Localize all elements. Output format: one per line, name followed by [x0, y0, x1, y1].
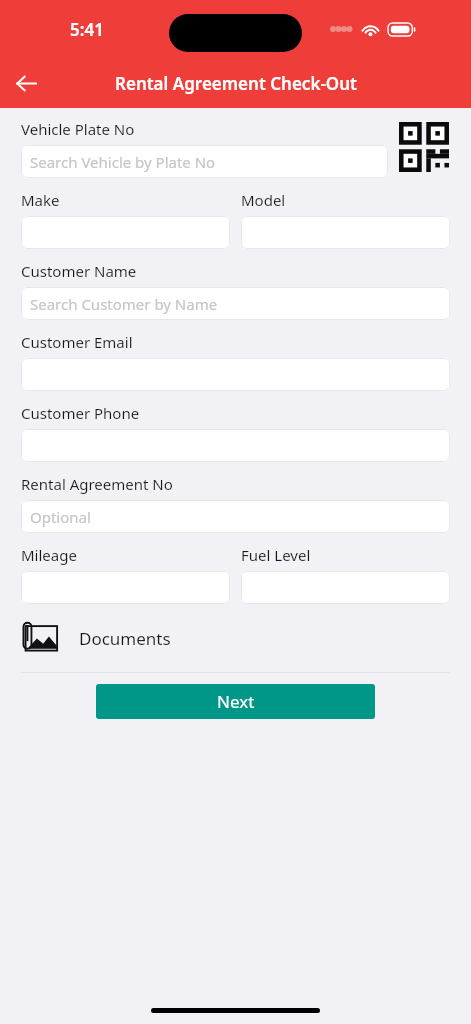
staticText: Model: [241, 190, 286, 210]
staticText: Fuel Level: [241, 545, 311, 565]
staticText: Customer Phone: [21, 403, 140, 423]
button[interactable]: [241, 571, 450, 604]
staticText: Make: [21, 190, 60, 210]
staticText: Vehicle Plate No: [21, 119, 135, 139]
button[interactable]: Search Vehicle by Plate No: [21, 145, 388, 178]
staticText: Mileage: [21, 545, 77, 565]
button[interactable]: Documents: [21, 621, 450, 655]
button[interactable]: [21, 571, 230, 604]
staticText: 5:41: [70, 18, 104, 41]
staticText: Search Customer by Name: [30, 294, 218, 314]
staticText: Rental Agreement No: [21, 474, 173, 494]
button[interactable]: [241, 216, 450, 249]
button[interactable]: Back: [10, 67, 42, 99]
staticText: Search Vehicle by Plate No: [30, 152, 216, 172]
button[interactable]: [21, 358, 450, 391]
button[interactable]: Scan QR code: [398, 121, 450, 173]
button[interactable]: Optional: [21, 500, 450, 533]
staticText: Customer Email: [21, 332, 133, 352]
button[interactable]: Search Customer by Name: [21, 287, 450, 320]
staticText: Customer Name: [21, 261, 137, 281]
staticText: Documents: [79, 627, 171, 650]
staticText: Next: [217, 690, 255, 713]
button[interactable]: [21, 216, 230, 249]
button[interactable]: [21, 429, 450, 462]
button[interactable]: Next: [96, 684, 375, 719]
staticText: Optional: [30, 507, 91, 527]
staticText: Rental Agreement Check-Out: [115, 72, 357, 95]
